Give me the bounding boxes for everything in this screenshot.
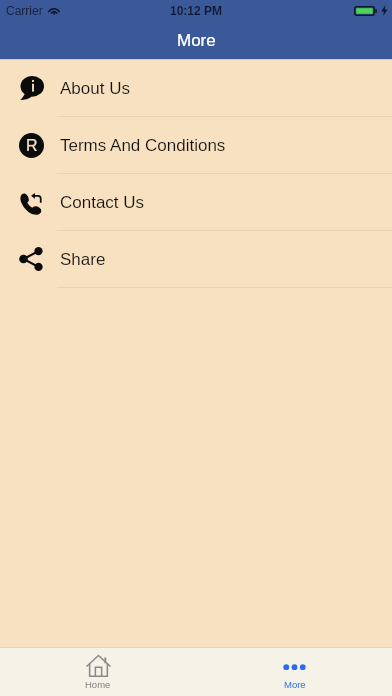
staticText: About Us bbox=[60, 79, 130, 98]
button[interactable]: Terms And Conditions bbox=[0, 117, 392, 174]
staticText: Home bbox=[85, 679, 111, 690]
staticText: Contact Us bbox=[60, 193, 145, 212]
staticText: More bbox=[177, 31, 216, 50]
staticText: Terms And Conditions bbox=[60, 136, 226, 155]
staticText: More bbox=[284, 679, 306, 690]
staticText: Carrier bbox=[6, 4, 43, 17]
button[interactable]: More bbox=[196, 648, 392, 696]
button[interactable]: Share bbox=[0, 231, 392, 288]
button[interactable]: About Us bbox=[0, 60, 392, 117]
staticText: R bbox=[26, 137, 38, 155]
button[interactable]: Home bbox=[0, 648, 196, 696]
button[interactable]: Contact Us bbox=[0, 174, 392, 231]
staticText: 10:12 PM bbox=[170, 4, 223, 17]
staticText: Share bbox=[60, 250, 106, 269]
